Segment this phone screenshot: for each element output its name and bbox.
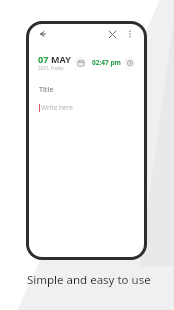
staticText: 07 [38,53,49,65]
button[interactable]: More options [122,26,138,42]
staticText: 2021, Friday [38,65,64,71]
staticText: MAY [51,53,71,65]
button[interactable]: Close [104,26,120,42]
button[interactable]: 02:47 pm [92,57,135,68]
button[interactable]: Back [35,26,51,42]
staticText: Write here [41,103,73,112]
staticText: 02:47 pm [92,58,121,67]
button[interactable]: 07 [38,53,86,71]
staticText: Title [39,85,54,95]
staticText: Simple and easy to use [27,272,151,288]
button[interactable]: Pick time [124,57,135,68]
button[interactable]: Pick date [75,57,86,68]
